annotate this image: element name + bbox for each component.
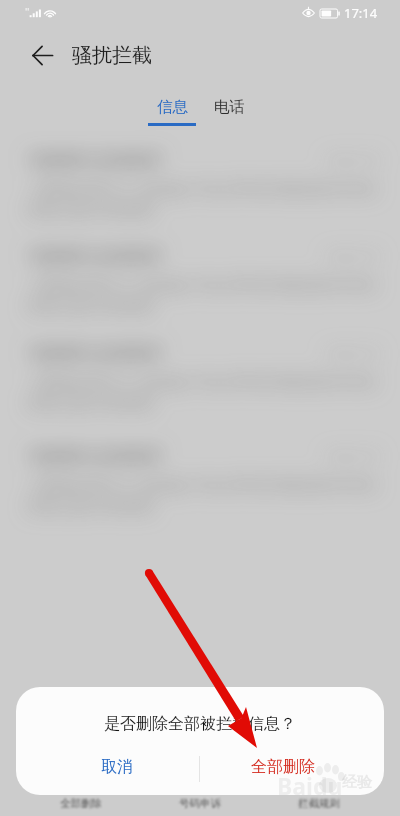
button[interactable]: Back bbox=[20, 33, 64, 77]
staticText: 经验 bbox=[342, 773, 372, 792]
staticText: 号码申诉 bbox=[179, 797, 221, 810]
button[interactable]: 全部删除 bbox=[200, 743, 384, 795]
staticText: 是否删除全部被拦截信息？ bbox=[104, 714, 296, 734]
staticText: 106901234567 bbox=[26, 339, 164, 366]
staticText: 拦截规则 bbox=[298, 797, 340, 810]
staticText: 骚扰拦截 bbox=[72, 43, 152, 68]
staticText: 信息 bbox=[157, 97, 188, 117]
button[interactable]: 电话 bbox=[205, 92, 254, 128]
staticText: 106901234567 bbox=[26, 242, 164, 269]
button[interactable]: 信息 bbox=[139, 92, 205, 128]
staticText: 106901234567 bbox=[26, 442, 164, 469]
button[interactable]: 号码申诉 bbox=[140, 792, 259, 816]
staticText: 全部删除 bbox=[60, 797, 102, 810]
button[interactable]: 全部删除 bbox=[22, 792, 140, 816]
staticText: 全部删除 bbox=[251, 757, 315, 777]
staticText: 106901234567 bbox=[26, 146, 164, 173]
staticText: 取消 bbox=[101, 757, 133, 777]
button[interactable]: 拦截规则 bbox=[259, 792, 378, 816]
staticText: 17:14 bbox=[344, 4, 378, 22]
staticText: Baidu bbox=[277, 770, 343, 801]
staticText: 电话 bbox=[214, 97, 245, 117]
button[interactable]: 取消 bbox=[16, 743, 199, 795]
